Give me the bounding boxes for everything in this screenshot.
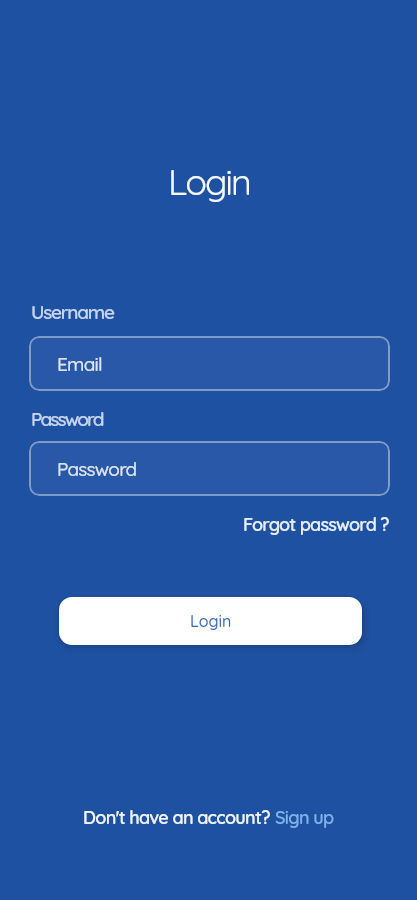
staticText: Password xyxy=(31,407,103,431)
staticText: Don't have an account? xyxy=(83,806,275,829)
staticText: Login xyxy=(168,159,250,204)
button[interactable]: Sign up xyxy=(275,806,334,829)
button[interactable]: Email xyxy=(29,336,390,391)
button[interactable]: Login xyxy=(59,597,362,645)
button[interactable]: Password xyxy=(29,441,390,496)
staticText: Username xyxy=(31,300,114,324)
staticText: Email xyxy=(57,352,102,376)
staticText: Password xyxy=(57,457,137,481)
button[interactable]: Forgot password ? xyxy=(243,513,389,536)
staticText: Login xyxy=(190,611,232,631)
